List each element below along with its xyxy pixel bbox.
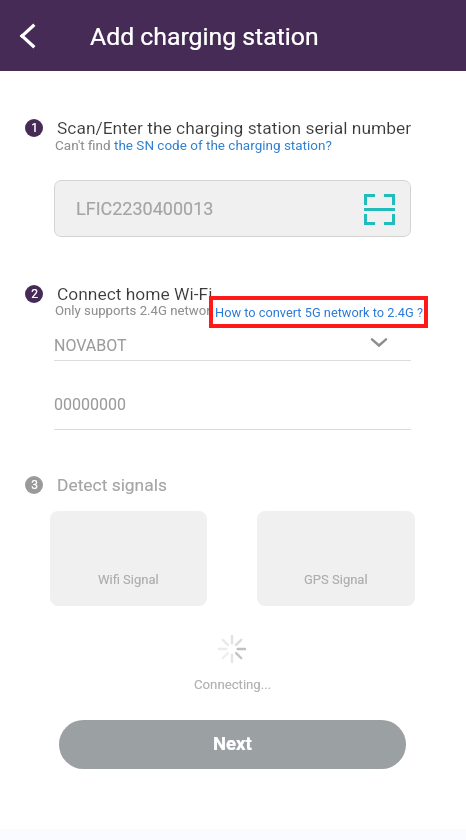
staticText: How to convert 5G network to 2.4G ?	[215, 305, 423, 320]
staticText: Connecting...	[194, 677, 272, 692]
staticText: Can't find	[55, 137, 114, 153]
staticText: 2	[31, 287, 38, 301]
staticText: NOVABOT	[54, 336, 127, 355]
staticText: Connect home Wi-Fi	[57, 284, 213, 304]
button[interactable]: NOVABOT	[54, 336, 411, 361]
button[interactable]: Scan QR code	[359, 189, 399, 229]
staticText: Next	[213, 733, 252, 755]
button[interactable]: Back	[3, 11, 53, 61]
button[interactable]: GPS Signal	[257, 511, 415, 606]
staticText: Add charging station	[90, 22, 319, 51]
staticText: Only supports 2.4G network	[55, 303, 218, 318]
button[interactable]: 00000000	[54, 395, 411, 430]
staticText: 1	[31, 121, 38, 135]
staticText: 3	[31, 478, 38, 492]
button[interactable]: the SN code of the charging station?	[114, 137, 332, 153]
staticText: Detect signals	[57, 475, 167, 495]
staticText: Scan/Enter the charging station serial n…	[57, 118, 412, 138]
staticText: GPS Signal	[304, 572, 368, 587]
button[interactable]: Wifi Signal	[50, 511, 207, 606]
staticText: Wifi Signal	[98, 572, 159, 587]
button[interactable]: Next	[59, 720, 406, 769]
staticText: 00000000	[54, 395, 126, 414]
staticText: LFIC2230400013	[76, 198, 214, 219]
button[interactable]: How to convert 5G network to 2.4G ?	[209, 296, 428, 328]
